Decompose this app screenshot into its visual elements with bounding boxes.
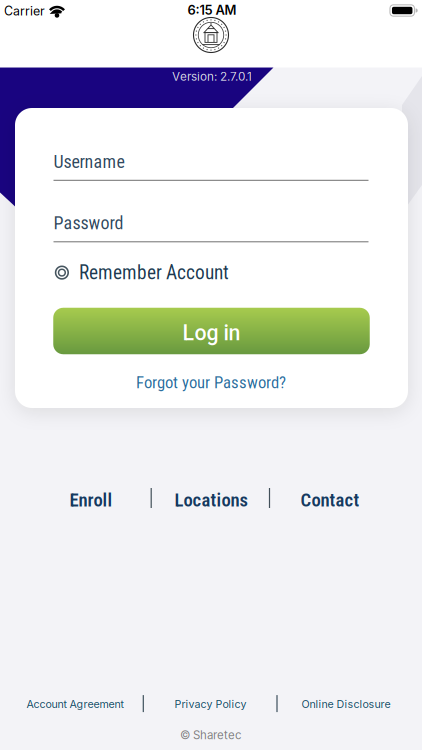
button[interactable]: Online Disclosure xyxy=(294,693,398,715)
staticText: Username xyxy=(53,151,124,172)
staticText: Account Agreement xyxy=(26,697,123,710)
staticText: Carrier xyxy=(4,3,45,18)
staticText: Log in xyxy=(182,320,240,345)
staticText: Version: 2.7.0.1 xyxy=(172,69,252,84)
button[interactable]: Privacy Policy xyxy=(165,693,255,715)
button[interactable]: Log in xyxy=(53,308,370,354)
staticText: Remember Account xyxy=(79,261,229,284)
staticText: Password xyxy=(53,213,123,234)
staticText: Forgot your Password? xyxy=(136,373,286,392)
button[interactable]: Account Agreement xyxy=(15,693,135,715)
button[interactable]: Remember Account xyxy=(56,259,376,287)
button[interactable]: Locations xyxy=(163,485,259,515)
button[interactable]: Forgot your Password? xyxy=(121,369,301,395)
staticText: Locations xyxy=(174,489,247,511)
button[interactable]: Contact xyxy=(290,485,370,515)
staticText: Enroll xyxy=(69,489,112,511)
staticText: Privacy Policy xyxy=(174,697,246,710)
staticText: © Sharetec xyxy=(180,728,242,742)
button[interactable]: Enroll xyxy=(56,485,126,515)
staticText: 6:15 AM xyxy=(187,2,236,18)
staticText: Contact xyxy=(300,489,359,511)
textField[interactable]: Password xyxy=(0,0,422,750)
staticText: Online Disclosure xyxy=(301,697,390,710)
textField[interactable]: Username xyxy=(0,0,422,750)
